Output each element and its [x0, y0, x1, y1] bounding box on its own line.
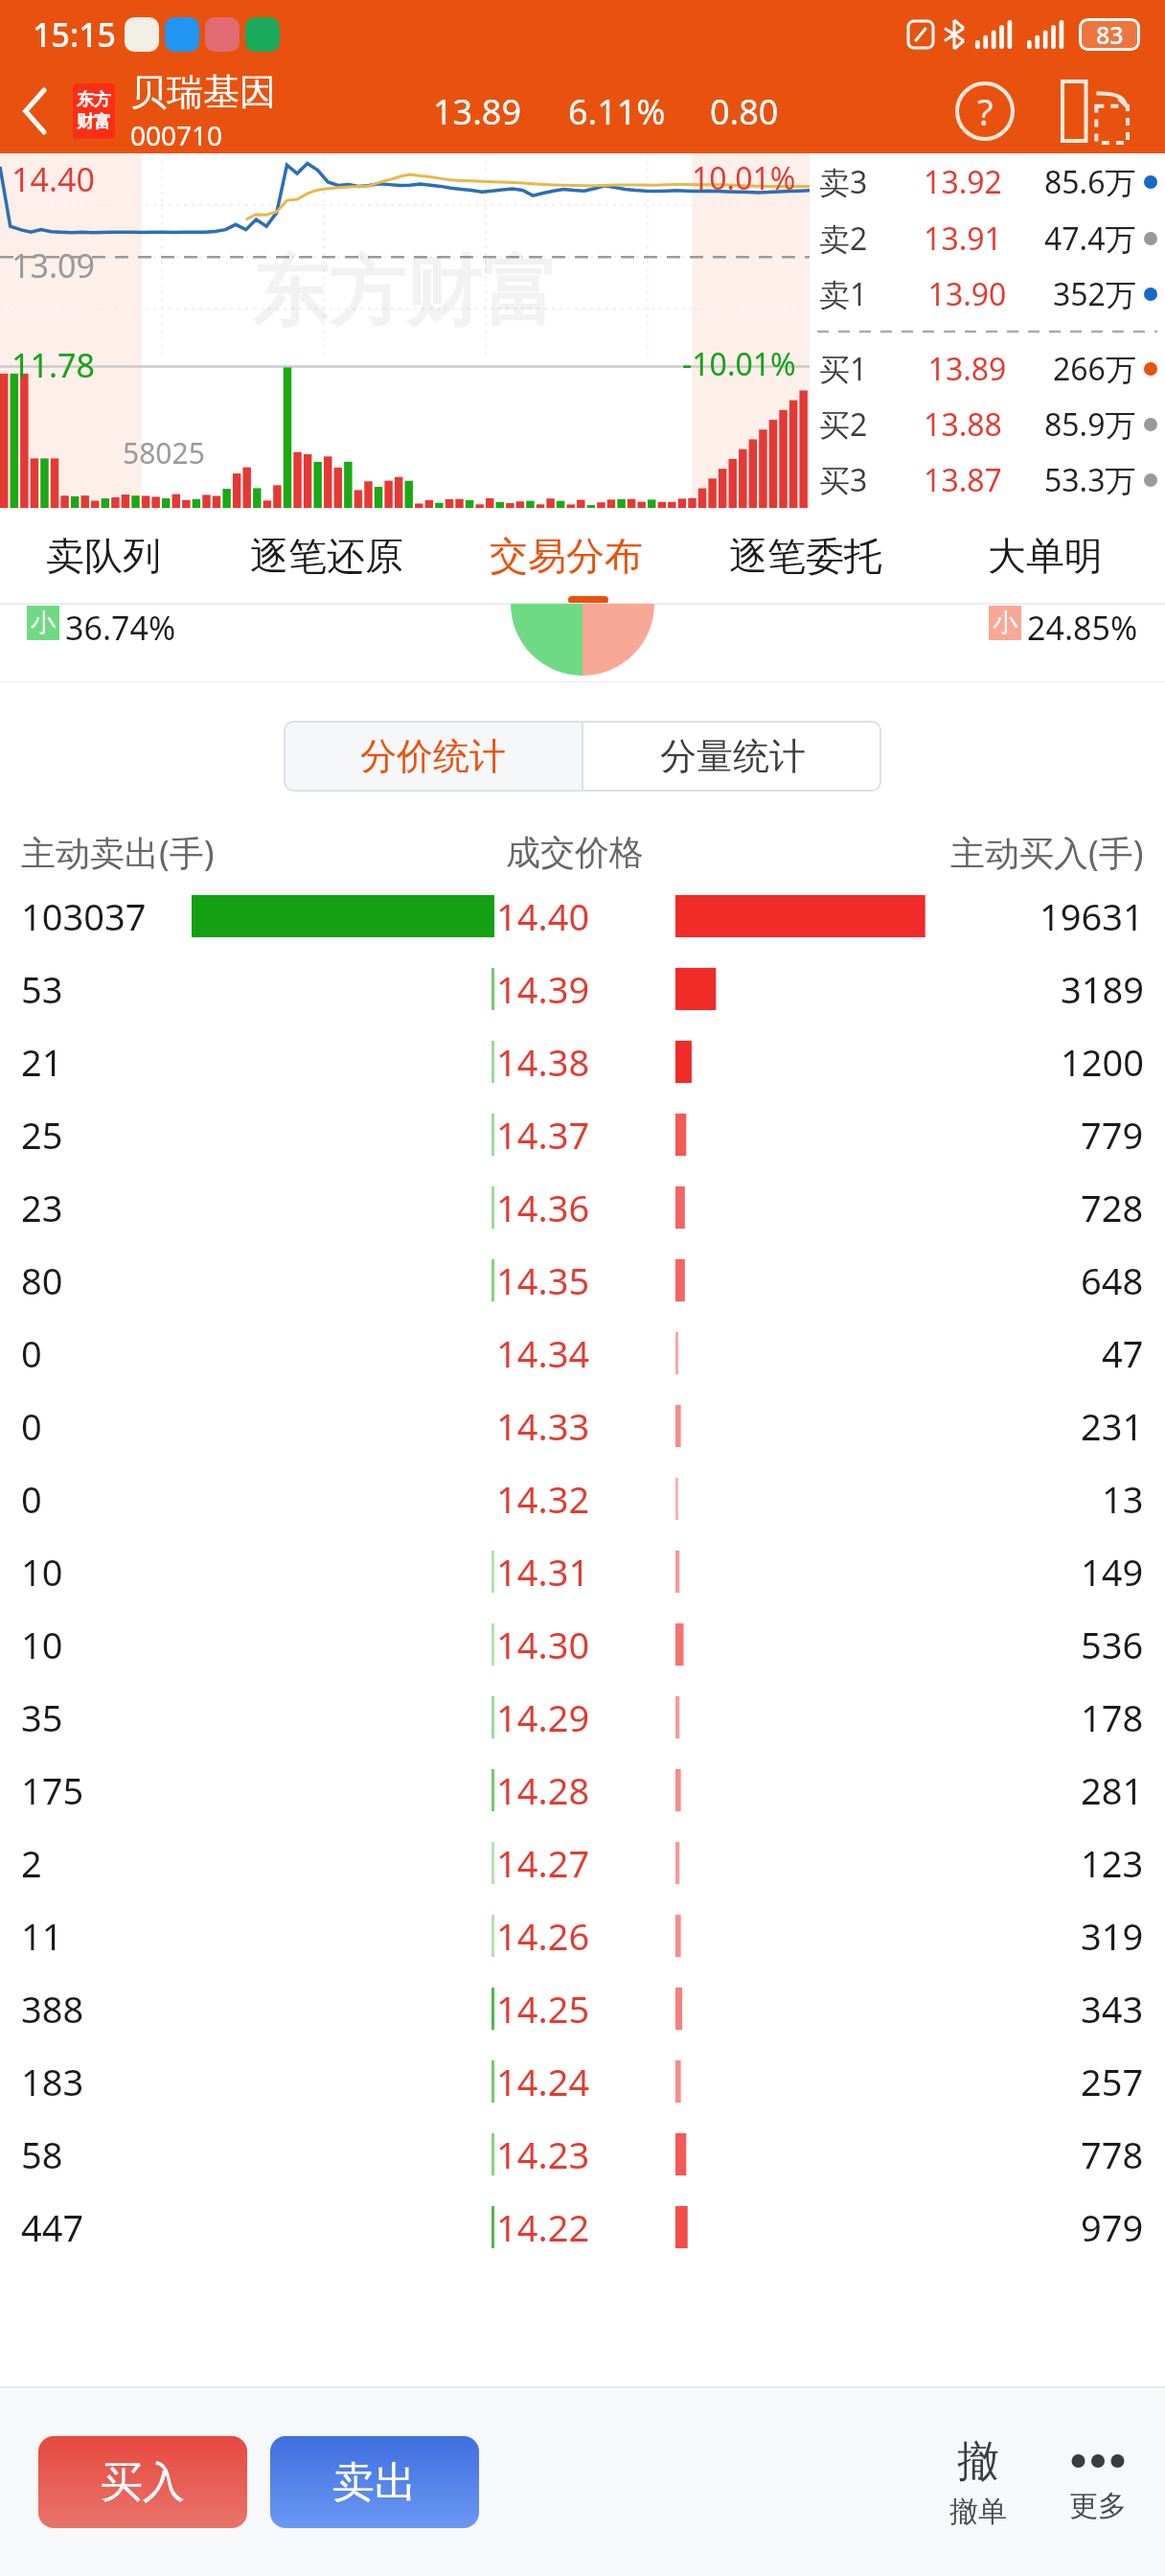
- staticText: 11.78: [11, 343, 95, 387]
- button[interactable]: 0: [0, 1390, 1165, 1462]
- button[interactable]: Back: [0, 69, 71, 153]
- staticText: 10: [21, 1547, 63, 1597]
- button[interactable]: 卖1: [810, 266, 1165, 322]
- button[interactable]: 183: [0, 2045, 1165, 2118]
- staticText: 178: [1081, 1692, 1144, 1742]
- button[interactable]: 25: [0, 1098, 1165, 1171]
- staticText: 266万: [1053, 348, 1136, 390]
- staticText: 卖2: [819, 218, 868, 260]
- staticText: 14.24: [496, 2057, 590, 2106]
- button[interactable]: 21: [0, 1025, 1165, 1098]
- button[interactable]: 80: [0, 1244, 1165, 1317]
- button[interactable]: 35: [0, 1681, 1165, 1754]
- button[interactable]: 53: [0, 953, 1165, 1025]
- button[interactable]: 买2: [810, 397, 1165, 452]
- button[interactable]: 卖出: [270, 2436, 479, 2528]
- staticText: 13.88: [881, 403, 1044, 446]
- button[interactable]: 103037: [0, 880, 1165, 953]
- staticText: 6.11%: [568, 88, 666, 135]
- staticText: 撤: [957, 2435, 999, 2488]
- staticText: 23: [21, 1183, 63, 1232]
- button[interactable]: 撤: [916, 2388, 1040, 2576]
- staticText: 14.32: [496, 1474, 590, 1524]
- staticText: 14.40: [496, 891, 590, 941]
- staticText: 3189: [1061, 964, 1144, 1014]
- staticText: 东方财富: [252, 244, 559, 341]
- button[interactable]: 交易分布: [446, 508, 686, 604]
- staticText: 13: [1102, 1474, 1144, 1524]
- staticText: 80: [21, 1255, 63, 1305]
- staticText: 53: [21, 964, 63, 1014]
- staticText: 13.89: [881, 348, 1053, 390]
- button[interactable]: 10: [0, 1535, 1165, 1608]
- staticText: 14.39: [496, 964, 590, 1014]
- staticText: 447: [21, 2202, 84, 2252]
- staticText: 撤单: [949, 2494, 1007, 2530]
- staticText: 14.26: [496, 1911, 590, 1961]
- button[interactable]: 卖3: [810, 153, 1165, 210]
- staticText: 13.09: [11, 243, 95, 287]
- staticText: 13.90: [881, 273, 1053, 315]
- staticText: 47: [1102, 1328, 1144, 1378]
- staticText: 10: [21, 1620, 63, 1669]
- button[interactable]: Help: [947, 73, 1023, 149]
- button[interactable]: 逐笔委托: [686, 508, 925, 604]
- staticText: 728: [1081, 1183, 1144, 1232]
- button[interactable]: 23: [0, 1171, 1165, 1244]
- staticText: 11: [21, 1911, 63, 1961]
- staticText: 2: [21, 1838, 42, 1888]
- button[interactable]: 卖队列: [0, 508, 207, 604]
- button[interactable]: 分量统计: [583, 721, 881, 792]
- staticText: 卖1: [819, 273, 868, 315]
- staticText: 24.85%: [1027, 606, 1138, 650]
- staticText: 83: [1096, 18, 1124, 51]
- button[interactable]: 10: [0, 1608, 1165, 1681]
- button[interactable]: 447: [0, 2191, 1165, 2264]
- staticText: 14.22: [496, 2202, 590, 2252]
- staticText: 成交价格: [506, 831, 644, 874]
- staticText: 14.31: [496, 1547, 590, 1597]
- button[interactable]: 0: [0, 1317, 1165, 1390]
- button[interactable]: 卖2: [810, 210, 1165, 266]
- staticText: -10.01%: [682, 343, 796, 385]
- button[interactable]: 11: [0, 1899, 1165, 1972]
- staticText: 14.30: [496, 1620, 590, 1669]
- staticText: 648: [1081, 1255, 1144, 1305]
- staticText: 36.74%: [65, 606, 176, 650]
- staticText: 19631: [1039, 891, 1144, 941]
- button[interactable]: 买入: [38, 2436, 247, 2528]
- button[interactable]: 分价统计: [284, 721, 582, 792]
- staticText: 交易分布: [490, 532, 643, 580]
- staticText: 分量统计: [660, 733, 806, 779]
- staticText: 175: [21, 1765, 84, 1815]
- button[interactable]: 更多: [1040, 2388, 1155, 2576]
- staticText: 388: [21, 1984, 84, 2034]
- button[interactable]: 买1: [810, 341, 1165, 397]
- staticText: 343: [1081, 1984, 1144, 2034]
- staticText: 14.27: [496, 1838, 590, 1888]
- button[interactable]: 买3: [810, 452, 1165, 508]
- staticText: 逐笔委托: [729, 532, 882, 580]
- button[interactable]: 388: [0, 1972, 1165, 2045]
- staticText: 25: [21, 1110, 63, 1160]
- staticText: 979: [1081, 2202, 1144, 2252]
- button[interactable]: 2: [0, 1827, 1165, 1899]
- staticText: 85.9万: [1044, 403, 1136, 446]
- staticText: 大单明: [988, 532, 1103, 580]
- staticText: 183: [21, 2057, 84, 2106]
- staticText: 买入: [101, 2456, 185, 2509]
- staticText: 14.25: [496, 1984, 590, 2034]
- staticText: 103037: [21, 891, 147, 941]
- staticText: 卖3: [819, 161, 868, 203]
- button[interactable]: 58: [0, 2118, 1165, 2191]
- staticText: 卖出: [332, 2456, 417, 2509]
- staticText: 卖队列: [46, 532, 161, 580]
- staticText: 319: [1081, 1911, 1144, 1961]
- button[interactable]: 0: [0, 1462, 1165, 1535]
- staticText: 13.92: [881, 161, 1044, 203]
- button[interactable]: 175: [0, 1754, 1165, 1827]
- button[interactable]: 逐笔还原: [207, 508, 446, 604]
- button[interactable]: Layout: [1054, 70, 1136, 152]
- button[interactable]: 大单明: [925, 508, 1165, 604]
- staticText: 14.34: [496, 1328, 590, 1378]
